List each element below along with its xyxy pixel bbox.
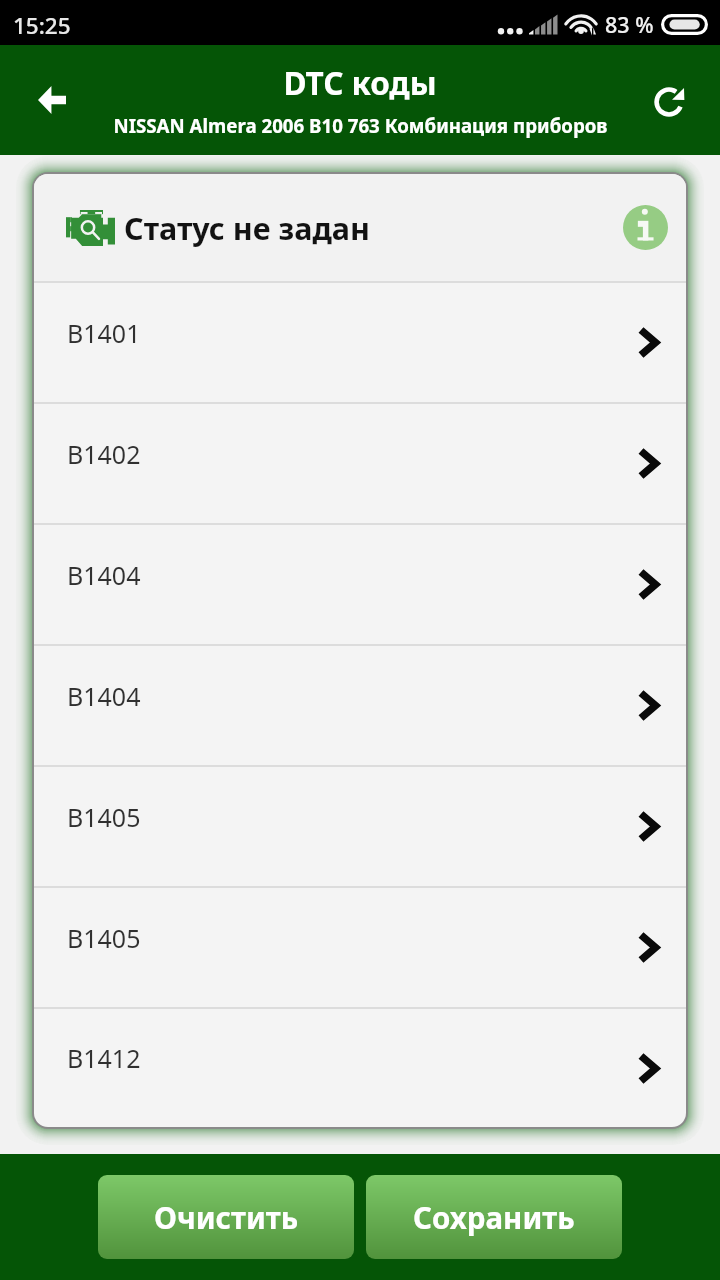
button[interactable]: B1405 bbox=[34, 888, 686, 1007]
button[interactable]: Back bbox=[0, 45, 104, 155]
staticText: B1404 bbox=[67, 679, 141, 713]
button[interactable]: Info bbox=[623, 205, 668, 250]
staticText: B1404 bbox=[67, 558, 141, 592]
button[interactable]: B1404 bbox=[34, 525, 686, 644]
button[interactable]: B1401 bbox=[34, 283, 686, 402]
button[interactable]: B1404 bbox=[34, 646, 686, 765]
staticText: Статус не задан bbox=[124, 207, 371, 249]
staticText: DTC коды bbox=[283, 61, 437, 104]
button[interactable]: Refresh bbox=[620, 47, 720, 157]
button[interactable]: B1412 bbox=[34, 1009, 686, 1127]
staticText: 83 % bbox=[605, 10, 654, 39]
staticText: Сохранить bbox=[413, 1197, 575, 1237]
staticText: B1412 bbox=[67, 1041, 141, 1075]
button[interactable]: Сохранить bbox=[366, 1175, 622, 1259]
staticText: B1402 bbox=[67, 437, 141, 471]
button[interactable]: Очистить bbox=[98, 1175, 354, 1259]
staticText: B1405 bbox=[67, 800, 141, 834]
staticText: NISSAN Almera 2006 B10 763 Комбинация пр… bbox=[113, 113, 608, 138]
staticText: Очистить bbox=[154, 1197, 299, 1237]
button[interactable]: B1405 bbox=[34, 767, 686, 886]
staticText: B1405 bbox=[67, 921, 141, 955]
staticText: B1401 bbox=[67, 316, 141, 350]
button[interactable]: B1402 bbox=[34, 404, 686, 523]
staticText: 15:25 bbox=[13, 10, 71, 41]
